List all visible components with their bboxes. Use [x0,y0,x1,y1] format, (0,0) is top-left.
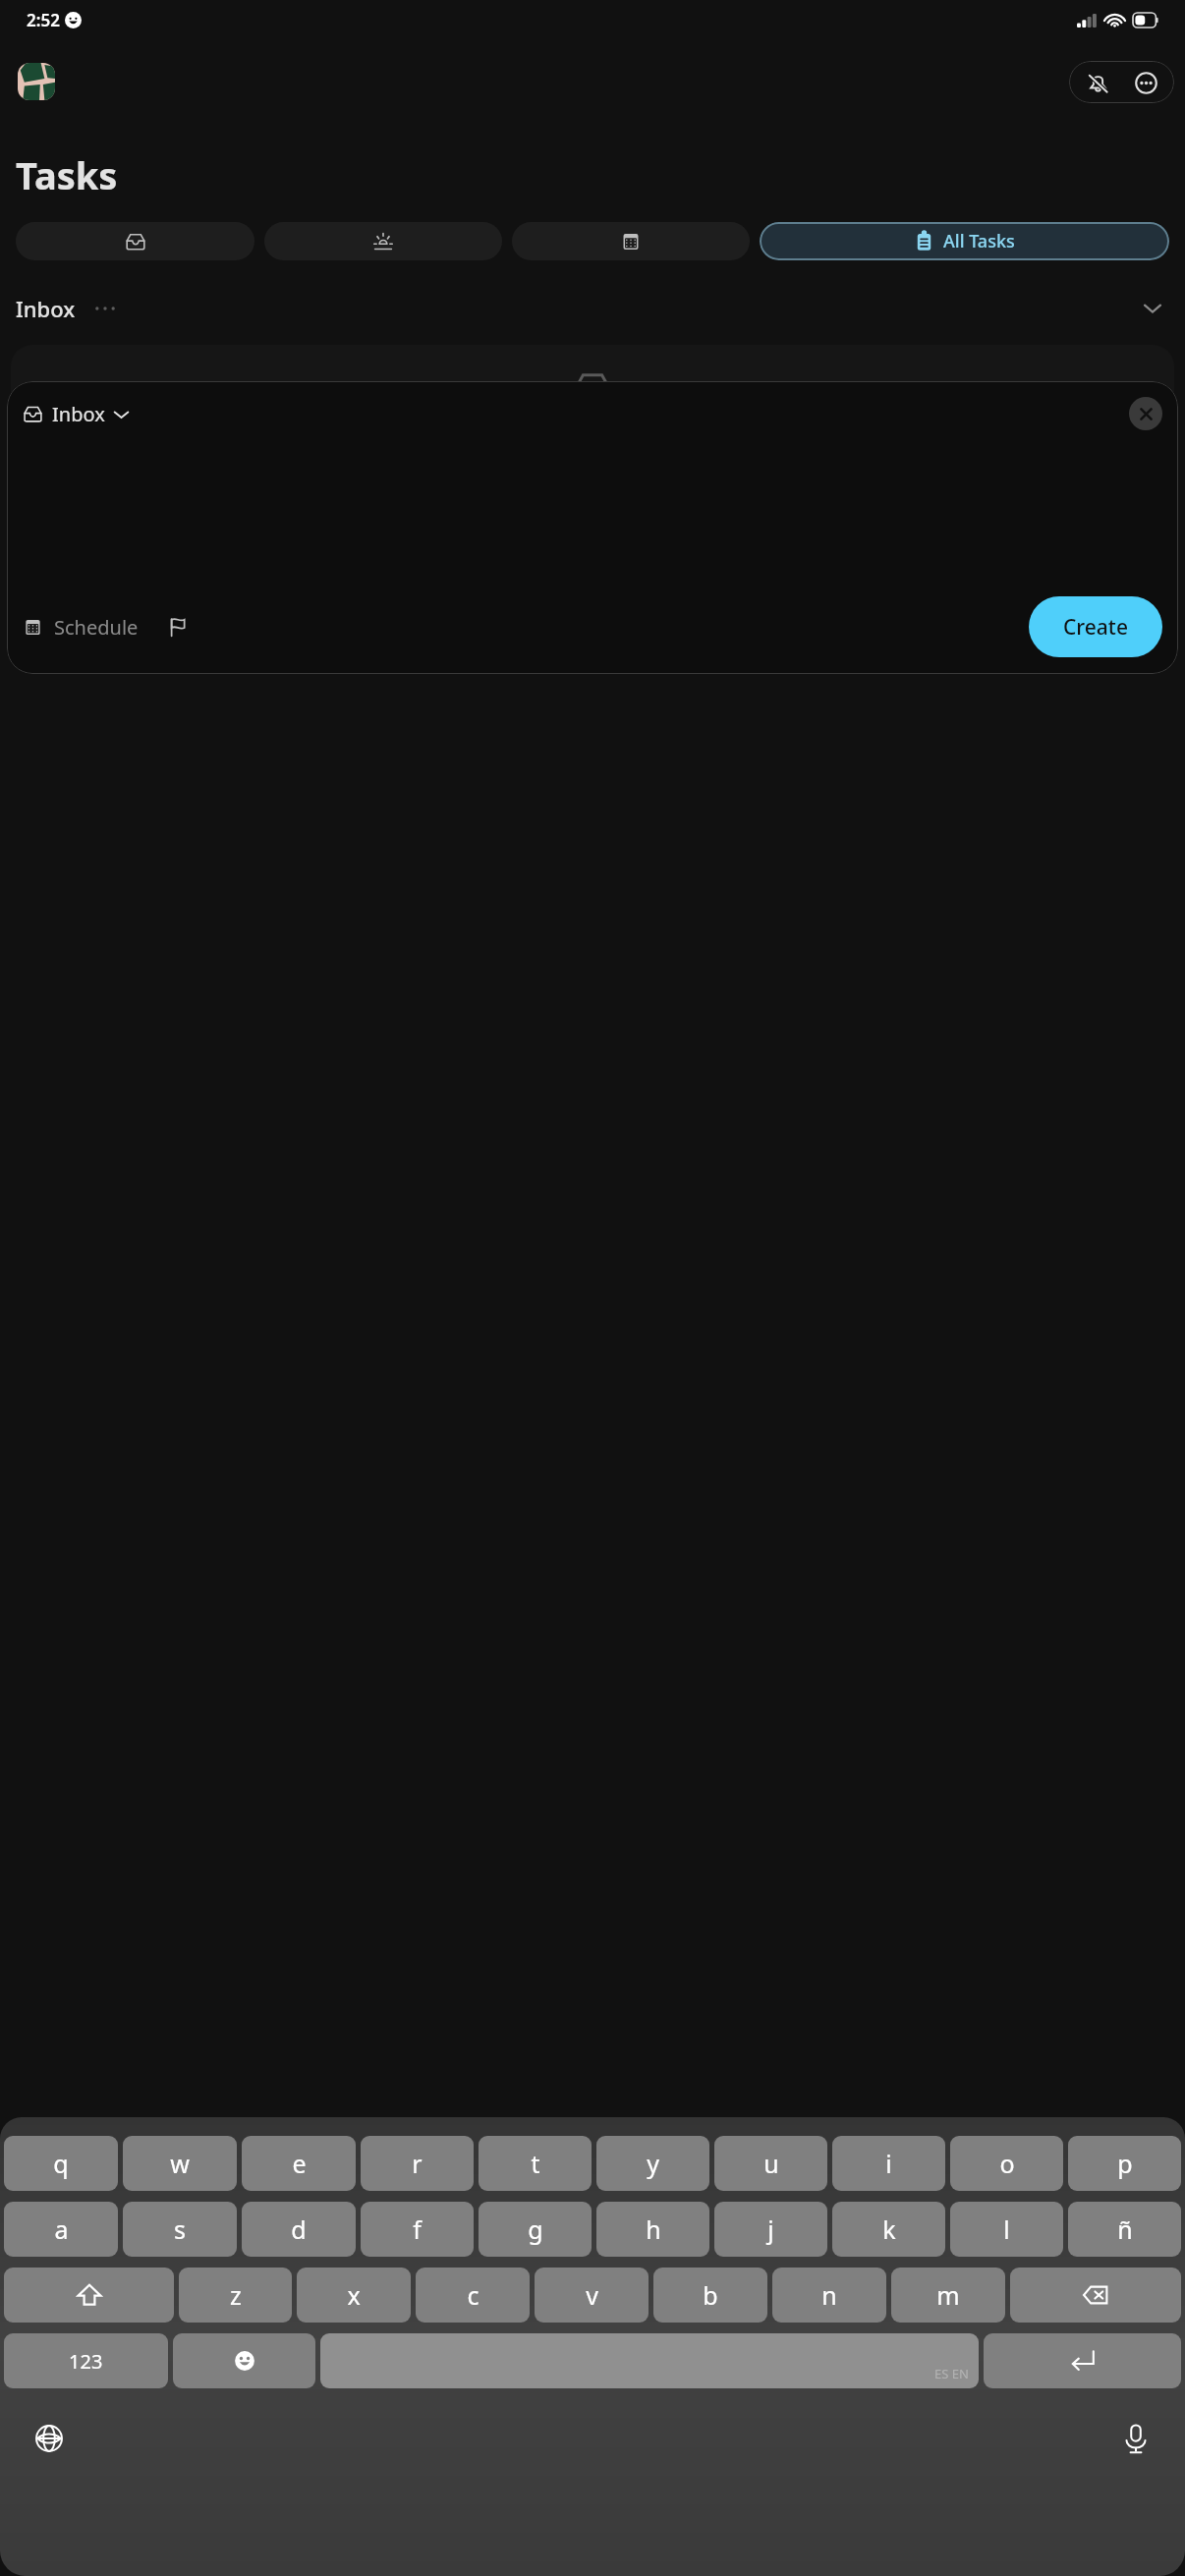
button[interactable]: Filter [512,222,750,260]
staticText: z [230,2278,242,2312]
button[interactable]: Priority flag [160,610,194,644]
staticText: d [291,2212,307,2246]
staticText: k [882,2212,896,2246]
button[interactable]: Backspace [1010,2268,1181,2323]
staticText: Inbox [16,294,76,323]
button[interactable]: Inbox [23,401,130,427]
staticText: s [174,2212,186,2246]
staticText: Schedule [54,614,139,641]
button[interactable]: a [4,2202,118,2257]
staticText: ñ [1117,2212,1133,2246]
button[interactable]: i [832,2136,945,2191]
button[interactable]: q [4,2136,118,2191]
button[interactable]: Close [1129,397,1162,430]
button[interactable]: y [596,2136,709,2191]
button[interactable]: Filter [16,222,254,260]
button[interactable]: Create [1029,596,1162,657]
button[interactable]: c [416,2268,530,2323]
button[interactable]: j [714,2202,827,2257]
button[interactable] [11,345,1174,492]
staticText: b [703,2278,718,2312]
staticText: h [646,2212,661,2246]
button[interactable]: Emoji [173,2333,315,2388]
button[interactable]: Enter [984,2333,1181,2388]
staticText: u [763,2147,779,2180]
staticText: i [885,2147,892,2180]
staticText: n [821,2278,837,2312]
button[interactable]: m [891,2268,1005,2323]
button[interactable]: Space [320,2333,979,2388]
button[interactable]: l [950,2202,1063,2257]
button[interactable]: ñ [1068,2202,1181,2257]
staticText: c [467,2278,480,2312]
button[interactable]: More options [1126,63,1165,102]
button[interactable]: t [479,2136,592,2191]
staticText: 2:52 [27,9,60,31]
button[interactable]: b [653,2268,767,2323]
staticText: j [767,2212,774,2246]
button[interactable]: o [950,2136,1063,2191]
staticText: p [1117,2147,1133,2180]
staticText: g [528,2212,543,2246]
staticText: All Tasks [943,229,1015,253]
button[interactable]: e [242,2136,356,2191]
staticText: o [999,2147,1015,2180]
staticText: r [412,2147,423,2180]
button[interactable]: Voice input [1108,2411,1163,2466]
button[interactable]: 123 [4,2333,168,2388]
staticText: x [347,2278,361,2312]
button[interactable]: r [361,2136,474,2191]
staticText: m [936,2278,960,2312]
button[interactable]: p [1068,2136,1181,2191]
staticText: y [647,2147,659,2180]
button[interactable]: n [772,2268,886,2323]
button[interactable]: d [242,2202,356,2257]
button[interactable]: k [832,2202,945,2257]
staticText: e [292,2147,307,2180]
button[interactable]: Change language [22,2411,77,2466]
button[interactable]: Shift [4,2268,174,2323]
staticText: f [413,2212,422,2246]
button[interactable]: f [361,2202,474,2257]
staticText: ES EN [934,2365,969,2382]
staticText: t [531,2147,540,2180]
staticText: Inbox [52,401,105,427]
button[interactable]: u [714,2136,827,2191]
staticText: v [586,2278,598,2312]
button[interactable]: Collapse [1136,292,1169,325]
button[interactable]: z [179,2268,292,2323]
button[interactable]: h [596,2202,709,2257]
button[interactable]: All Tasks [760,222,1169,260]
button[interactable]: v [535,2268,649,2323]
button[interactable]: Filter [264,222,502,260]
staticText: q [53,2147,69,2180]
button[interactable]: Profile [18,63,55,100]
staticText: 123 [69,2348,103,2375]
button[interactable]: x [297,2268,411,2323]
button[interactable]: g [479,2202,592,2257]
staticText: l [1003,2212,1010,2246]
button[interactable]: s [123,2202,237,2257]
staticText: a [54,2212,69,2246]
button[interactable]: Notifications off [1078,63,1117,102]
staticText: Tasks [16,149,118,200]
button[interactable]: Schedule [23,614,139,641]
staticText: w [170,2147,190,2180]
button[interactable]: Inbox [16,294,117,323]
staticText: Create [1063,613,1128,642]
button[interactable]: w [123,2136,237,2191]
